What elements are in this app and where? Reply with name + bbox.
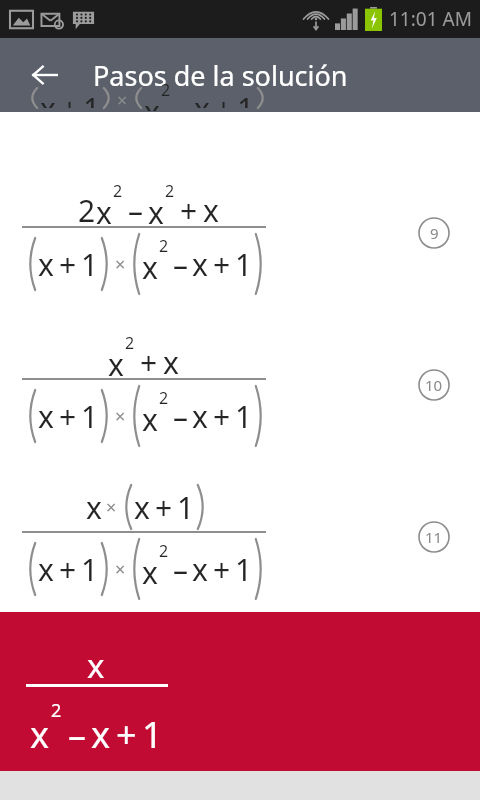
- button[interactable]: [0, 328, 480, 476]
- staticText: x: [87, 643, 105, 688]
- staticText: 2: [165, 180, 175, 202]
- staticText: +: [140, 342, 158, 383]
- staticText: x: [192, 244, 208, 285]
- staticText: x: [40, 88, 56, 108]
- staticText: ×: [115, 404, 126, 429]
- button[interactable]: [0, 176, 480, 324]
- staticText: 1: [83, 88, 101, 108]
- staticText: +: [116, 710, 137, 759]
- staticText: x: [142, 552, 158, 593]
- staticText: +: [59, 549, 77, 590]
- staticText: –: [128, 190, 143, 231]
- staticText: x: [192, 396, 208, 437]
- staticText: 2: [78, 190, 96, 231]
- staticText: +: [155, 487, 173, 528]
- staticText: ×: [115, 557, 126, 582]
- staticText: 1: [235, 549, 253, 590]
- staticText: 1: [81, 244, 99, 285]
- staticText: +: [213, 396, 231, 437]
- button[interactable]: [0, 481, 480, 629]
- staticText: 1: [177, 487, 195, 528]
- staticText: x: [142, 399, 158, 440]
- staticText: +: [61, 88, 79, 108]
- staticText: x: [163, 342, 179, 383]
- staticText: +: [59, 396, 77, 437]
- staticText: 2: [51, 698, 62, 723]
- staticText: –: [68, 710, 86, 759]
- staticText: x: [86, 487, 102, 528]
- staticText: 11:01 AM: [389, 6, 472, 32]
- staticText: 1: [81, 396, 99, 437]
- staticText: 10: [425, 375, 443, 395]
- staticText: +: [215, 88, 233, 108]
- staticText: x: [134, 487, 150, 528]
- staticText: 11: [425, 527, 443, 547]
- staticText: x: [142, 247, 158, 288]
- staticText: 1: [142, 710, 163, 759]
- staticText: Pasos de la solución: [93, 57, 348, 94]
- staticText: –: [173, 396, 188, 437]
- staticText: x: [203, 190, 219, 231]
- staticText: 1: [235, 244, 253, 285]
- staticText: +: [213, 549, 231, 590]
- staticText: ×: [115, 252, 126, 277]
- staticText: x: [148, 192, 164, 233]
- staticText: x: [38, 396, 54, 437]
- staticText: x: [91, 710, 111, 759]
- staticText: +: [180, 190, 198, 231]
- staticText: –: [173, 244, 188, 285]
- staticText: 9: [430, 223, 439, 243]
- staticText: ×: [117, 88, 128, 108]
- staticText: x: [30, 710, 50, 759]
- staticText: x: [38, 549, 54, 590]
- button[interactable]: x: [0, 612, 480, 771]
- staticText: x: [108, 344, 124, 385]
- staticText: x: [144, 91, 160, 111]
- staticText: 2: [113, 180, 123, 202]
- staticText: 2: [159, 387, 169, 409]
- staticText: 1: [237, 88, 255, 108]
- staticText: –: [173, 549, 188, 590]
- staticText: 1: [81, 549, 99, 590]
- staticText: x: [38, 244, 54, 285]
- staticText: 2: [159, 540, 169, 562]
- staticText: 2: [161, 79, 171, 99]
- staticText: 1: [235, 396, 253, 437]
- staticText: ×: [106, 495, 117, 520]
- staticText: x: [194, 88, 210, 108]
- staticText: x: [96, 192, 112, 233]
- staticText: x: [192, 549, 208, 590]
- staticText: 2: [125, 332, 135, 354]
- button[interactable]: Back: [22, 52, 68, 98]
- staticText: +: [59, 244, 77, 285]
- staticText: 2: [159, 235, 169, 257]
- staticText: +: [213, 244, 231, 285]
